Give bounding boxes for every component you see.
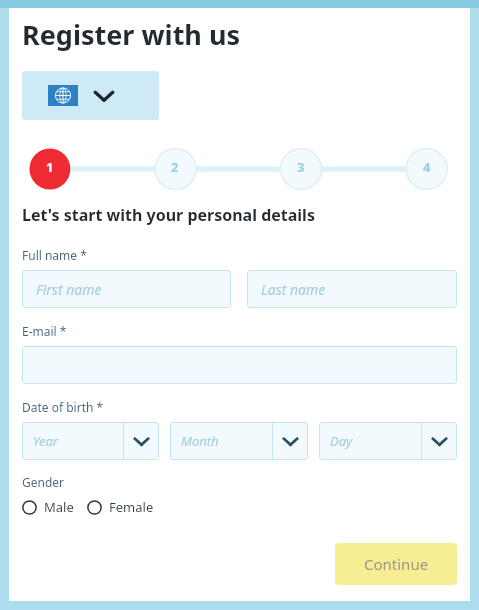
button[interactable]: Continue [335, 543, 457, 585]
button[interactable]: Select language [22, 71, 159, 120]
button[interactable]: First name [22, 270, 231, 308]
button[interactable]: Female [87, 494, 154, 520]
staticText: 2 [171, 158, 179, 176]
staticText: E-mail * [22, 323, 67, 339]
staticText: Day [330, 432, 353, 450]
staticText: Last name [261, 280, 326, 299]
staticText: Female [109, 498, 154, 516]
staticText: Full name * [22, 247, 87, 263]
staticText: Year [33, 432, 59, 450]
staticText: Month [181, 432, 219, 450]
staticText: Date of birth * [22, 399, 104, 415]
staticText: Gender [22, 474, 65, 490]
button[interactable]: Day [319, 422, 457, 460]
staticText: Continue [364, 554, 429, 574]
button[interactable] [22, 346, 457, 384]
staticText: 1 [46, 158, 54, 176]
staticText: Register with us [22, 16, 241, 53]
staticText: Male [44, 498, 74, 516]
button[interactable]: Step 4 [407, 147, 447, 187]
staticText: First name [36, 280, 102, 299]
button[interactable]: Male [22, 494, 74, 520]
button[interactable]: Step 2 [155, 147, 195, 187]
button[interactable]: Year [22, 422, 159, 460]
staticText: Let's start with your personal details [22, 204, 315, 226]
button[interactable]: Last name [247, 270, 457, 308]
button[interactable]: Step 1 [30, 147, 70, 187]
staticText: 4 [423, 158, 431, 176]
staticText: 3 [297, 158, 305, 176]
button[interactable]: Step 3 [281, 147, 321, 187]
button[interactable]: Month [170, 422, 308, 460]
